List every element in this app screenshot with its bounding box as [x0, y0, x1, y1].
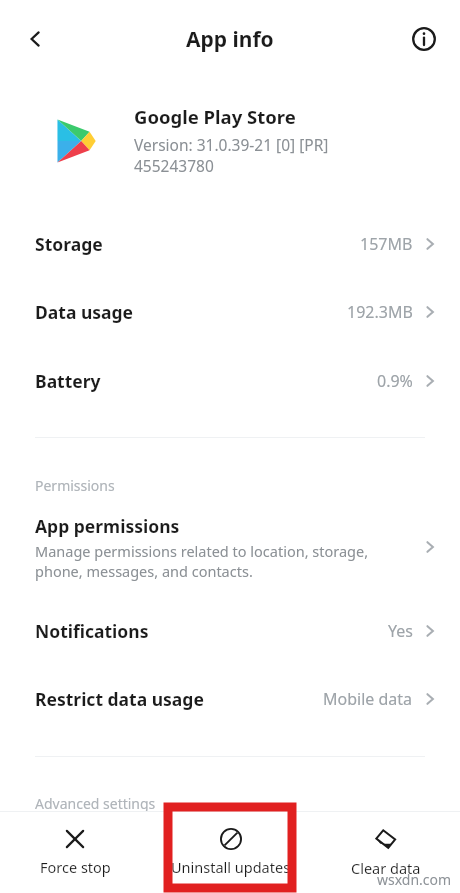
button[interactable]: Back — [14, 17, 58, 61]
button[interactable]: Restrict data usage — [0, 677, 460, 721]
staticText: 455243780 — [134, 155, 214, 176]
button[interactable]: Battery — [0, 359, 460, 403]
staticText: Version: 31.0.39-21 [0] [PR] — [134, 134, 329, 155]
staticText: Clear data — [351, 858, 421, 878]
button[interactable]: Data usage — [0, 290, 460, 334]
button[interactable]: Uninstall updates — [150, 812, 311, 893]
staticText: 192.3MB — [347, 301, 413, 323]
staticText: App info — [186, 25, 274, 54]
staticText: Notifications — [35, 619, 388, 643]
button[interactable]: Force stop — [0, 812, 150, 893]
staticText: Permissions — [35, 476, 115, 495]
button[interactable]: Notifications — [0, 609, 460, 653]
button[interactable]: App permissions — [0, 508, 460, 586]
staticText: 157MB — [360, 233, 413, 255]
staticText: App permissions — [35, 514, 180, 538]
staticText: Uninstall updates — [171, 857, 291, 877]
staticText: Battery — [35, 369, 377, 393]
staticText: 0.9% — [377, 370, 413, 392]
button[interactable]: Clear data — [311, 812, 460, 893]
staticText: Data usage — [35, 300, 347, 324]
staticText: Google Play Store — [134, 104, 296, 129]
staticText: wsxdn.com — [377, 870, 452, 889]
staticText: Storage — [35, 232, 360, 256]
staticText: Manage permissions related to location, … — [35, 541, 369, 581]
button[interactable]: Storage — [0, 222, 460, 266]
staticText: Advanced settings — [35, 794, 156, 813]
staticText: Mobile data — [323, 688, 413, 710]
staticText: Force stop — [40, 857, 111, 877]
button[interactable]: App details info — [402, 17, 446, 61]
staticText: Yes — [388, 620, 413, 642]
staticText: Restrict data usage — [35, 687, 323, 711]
